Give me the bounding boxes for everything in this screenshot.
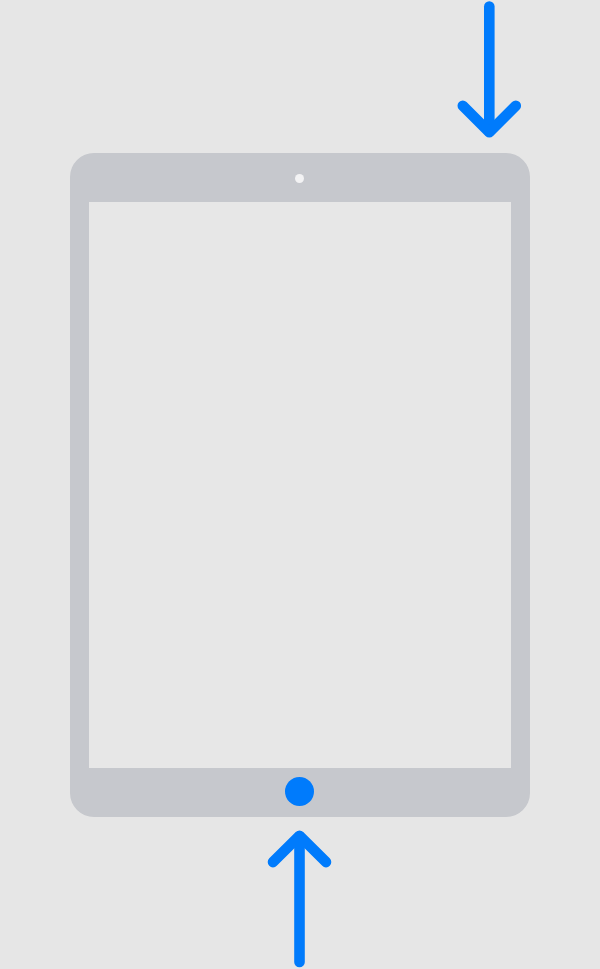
button[interactable]: Home button bbox=[285, 777, 314, 806]
button[interactable]: Tablet bbox=[70, 153, 530, 817]
